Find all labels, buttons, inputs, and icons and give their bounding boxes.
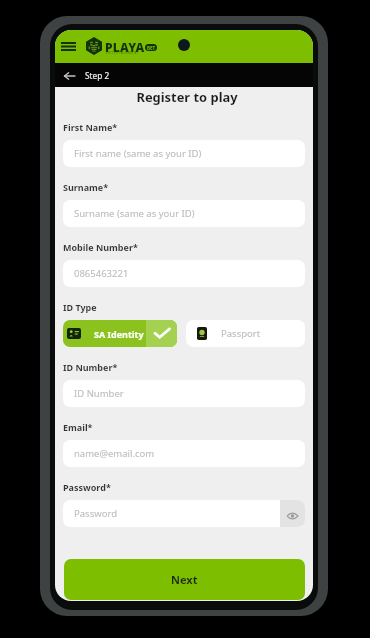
- staticText: Next: [171, 572, 198, 587]
- button[interactable]: Surname (same as your ID): [63, 200, 305, 227]
- button[interactable]: ID Number: [63, 380, 305, 407]
- staticText: Password*: [63, 481, 111, 493]
- staticText: Register to play: [136, 88, 238, 106]
- staticText: Step 2: [85, 70, 110, 81]
- staticText: BET: [147, 45, 156, 51]
- staticText: name@email.com: [74, 447, 155, 460]
- staticText: ID Type: [63, 301, 97, 313]
- button[interactable]: First name (same as your ID): [63, 140, 305, 167]
- button[interactable]: SA Identity: [63, 320, 177, 347]
- button[interactable]: 0865463221: [63, 260, 305, 287]
- staticText: Password: [74, 507, 117, 520]
- staticText: First name (same as your ID): [74, 147, 202, 160]
- staticText: PLAYA: [105, 39, 145, 55]
- staticText: Surname*: [63, 181, 109, 193]
- staticText: ID Number: [74, 387, 124, 400]
- staticText: 0865463221: [74, 267, 129, 280]
- button[interactable]: Show password: [280, 500, 305, 527]
- staticText: Mobile Number*: [63, 241, 138, 253]
- button[interactable]: name@email.com: [63, 440, 305, 467]
- staticText: Email*: [63, 421, 93, 433]
- staticText: ID Number*: [63, 361, 118, 373]
- staticText: ENTERTAINMENT: [106, 51, 140, 55]
- staticText: Passport: [221, 327, 261, 340]
- staticText: First Name*: [63, 121, 118, 133]
- button[interactable]: Menu: [59, 38, 78, 54]
- staticText: SA Identity: [94, 328, 144, 340]
- button[interactable]: Passport: [186, 320, 305, 347]
- button[interactable]: Next: [64, 559, 305, 600]
- button[interactable]: Password: [63, 500, 305, 527]
- button[interactable]: Back: [62, 68, 77, 83]
- staticText: Surname (same as your ID): [74, 207, 195, 220]
